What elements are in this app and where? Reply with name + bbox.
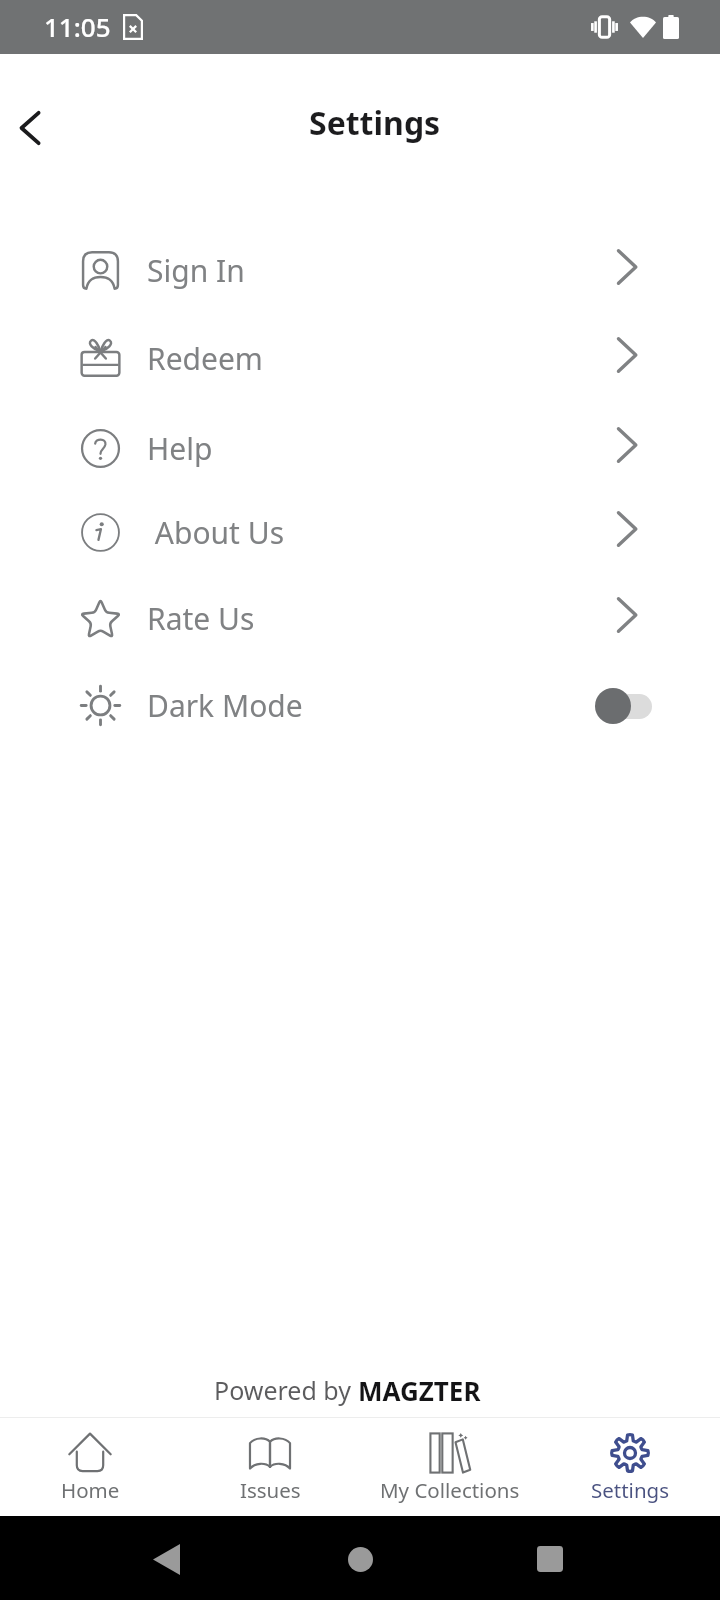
staticText: Help [147,428,213,469]
staticText: Issues [240,1476,301,1504]
button[interactable]: Rate Us [0,575,720,662]
staticText: My Collections [380,1476,520,1504]
button[interactable]: Settings [540,1418,720,1504]
button[interactable]: Back [0,97,62,159]
button[interactable]: My Collections [360,1418,540,1504]
staticText: Powered by [214,1373,358,1407]
staticText: Rate Us [147,598,255,639]
other: Home [348,1547,373,1572]
staticText: Sign In [147,250,245,291]
other: Recents [537,1546,563,1572]
button[interactable]: Dark Mode toggle [595,687,652,725]
staticText: About Us [147,512,285,553]
button[interactable]: Issues [180,1418,360,1504]
button[interactable]: About Us [0,489,720,576]
staticText: Redeem [147,338,263,379]
staticText: Home [61,1476,120,1504]
staticText: MAGZTER [358,1373,481,1408]
button[interactable]: Redeem [0,315,720,402]
staticText: Settings [309,101,441,145]
button[interactable]: Help [0,405,720,492]
button[interactable]: Dark Mode [0,662,720,749]
staticText: Dark Mode [147,685,303,726]
button[interactable]: Sign In [0,227,720,314]
staticText: 11:05 [44,9,111,44]
button[interactable]: Home [0,1418,180,1504]
staticText: Settings [591,1476,670,1504]
other: Back [153,1544,180,1575]
